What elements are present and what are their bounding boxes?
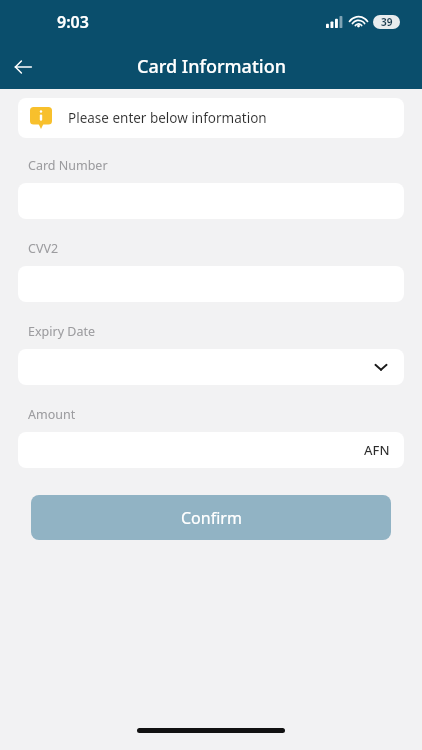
staticText: Card Number [28,157,108,174]
staticText: AFN [364,441,390,459]
staticText: CVV2 [28,240,59,257]
staticText: Confirm [181,507,242,529]
staticText: Please enter below information [68,109,267,127]
button[interactable]: Back [0,44,46,89]
button[interactable]: AFN [18,432,404,468]
staticText: Expiry Date [28,323,95,340]
staticText: Card Information [137,54,286,79]
staticText: Amount [28,406,76,423]
staticText: 9:03 [57,11,89,33]
button[interactable]: Open expiry date picker [18,349,404,385]
button[interactable]: Please enter below information [18,98,404,138]
button[interactable]: Confirm [31,495,391,540]
other: Open expiry date picker [372,358,390,376]
staticText: 39 [381,15,393,29]
